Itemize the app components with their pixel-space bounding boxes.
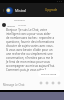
staticText: Si vous avez besoin d'aide pour un proje… bbox=[6, 48, 56, 52]
button[interactable]: Action bbox=[57, 81, 61, 85]
button[interactable]: Action bbox=[39, 81, 43, 85]
staticText: conversation, n'hesitez pas a me le dire… bbox=[6, 56, 56, 60]
staticText: une recherche ou simplement une bbox=[6, 52, 53, 56]
staticText: Upgrade bbox=[45, 8, 58, 12]
staticText: Bonjour ! Je suis Le Chat, votre assista… bbox=[6, 28, 56, 32]
staticText: Mistral bbox=[7, 24, 16, 27]
staticText: intelligent concu pour vous aider dans bbox=[6, 32, 56, 36]
staticText: discuter de sujets varies avec vous. bbox=[6, 44, 54, 48]
staticText: yesterday bbox=[14, 18, 25, 21]
staticText: Tell me more bbox=[41, 72, 57, 75]
staticText: Je ferai de mon mieux pour vous bbox=[6, 60, 50, 64]
staticText: Le Chat bbox=[18, 24, 27, 27]
staticText: Comment puis-je vous aider ? bbox=[6, 68, 47, 72]
staticText: Message Le Chat bbox=[3, 83, 25, 87]
staticText: de nombreuses taches : repondre a vos bbox=[6, 36, 56, 40]
button[interactable]: Back bbox=[1, 8, 6, 13]
button[interactable]: Tell me more bbox=[38, 70, 60, 77]
staticText: accompagner au mieux aujourd'hui. bbox=[6, 64, 56, 68]
button[interactable]: Upgrade bbox=[44, 7, 59, 13]
button[interactable]: Action bbox=[51, 81, 55, 85]
staticText: questions, fournir des informations et bbox=[6, 40, 56, 44]
button[interactable]: Action bbox=[45, 81, 49, 85]
staticText: Mistral bbox=[15, 8, 27, 13]
